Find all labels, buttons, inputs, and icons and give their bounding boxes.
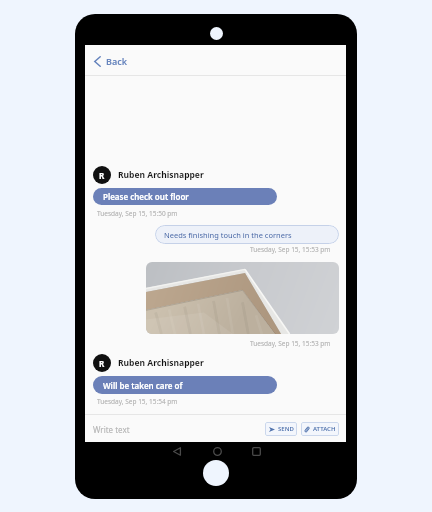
staticText: R bbox=[99, 170, 105, 181]
button[interactable]: SEND bbox=[265, 422, 297, 436]
staticText: Will be taken care of bbox=[103, 380, 183, 391]
button[interactable]: R bbox=[93, 166, 204, 184]
button[interactable]: Back bbox=[168, 443, 186, 459]
button[interactable]: Photo of floor corner bbox=[146, 262, 339, 334]
button[interactable]: Needs finishing touch in the corners bbox=[155, 225, 339, 244]
staticText: Tuesday, Sep 15, 15:50 pm bbox=[97, 209, 178, 218]
staticText: Write text bbox=[93, 424, 130, 435]
staticText: Please check out floor bbox=[103, 191, 189, 202]
button[interactable]: R bbox=[93, 354, 204, 372]
staticText: ATTACH bbox=[313, 425, 336, 433]
staticText: Ruben Archisnapper bbox=[118, 357, 204, 369]
staticText: Tuesday, Sep 15, 15:54 pm bbox=[97, 397, 178, 406]
button[interactable]: Home bbox=[208, 443, 226, 459]
button[interactable]: Please check out floor bbox=[93, 188, 277, 205]
button[interactable]: Recent apps bbox=[247, 443, 265, 459]
staticText: Back bbox=[106, 55, 128, 67]
staticText: Tuesday, Sep 15, 15:53 pm bbox=[250, 245, 331, 254]
staticText: Tuesday, Sep 15, 15:53 pm bbox=[250, 339, 331, 348]
button[interactable]: Will be taken care of bbox=[93, 376, 277, 394]
button[interactable]: Back bbox=[93, 53, 129, 69]
staticText: SEND bbox=[278, 425, 294, 433]
staticText: Needs finishing touch in the corners bbox=[164, 230, 292, 240]
button[interactable]: ATTACH bbox=[301, 422, 339, 436]
staticText: R bbox=[99, 358, 105, 369]
staticText: Ruben Archisnapper bbox=[118, 169, 204, 181]
